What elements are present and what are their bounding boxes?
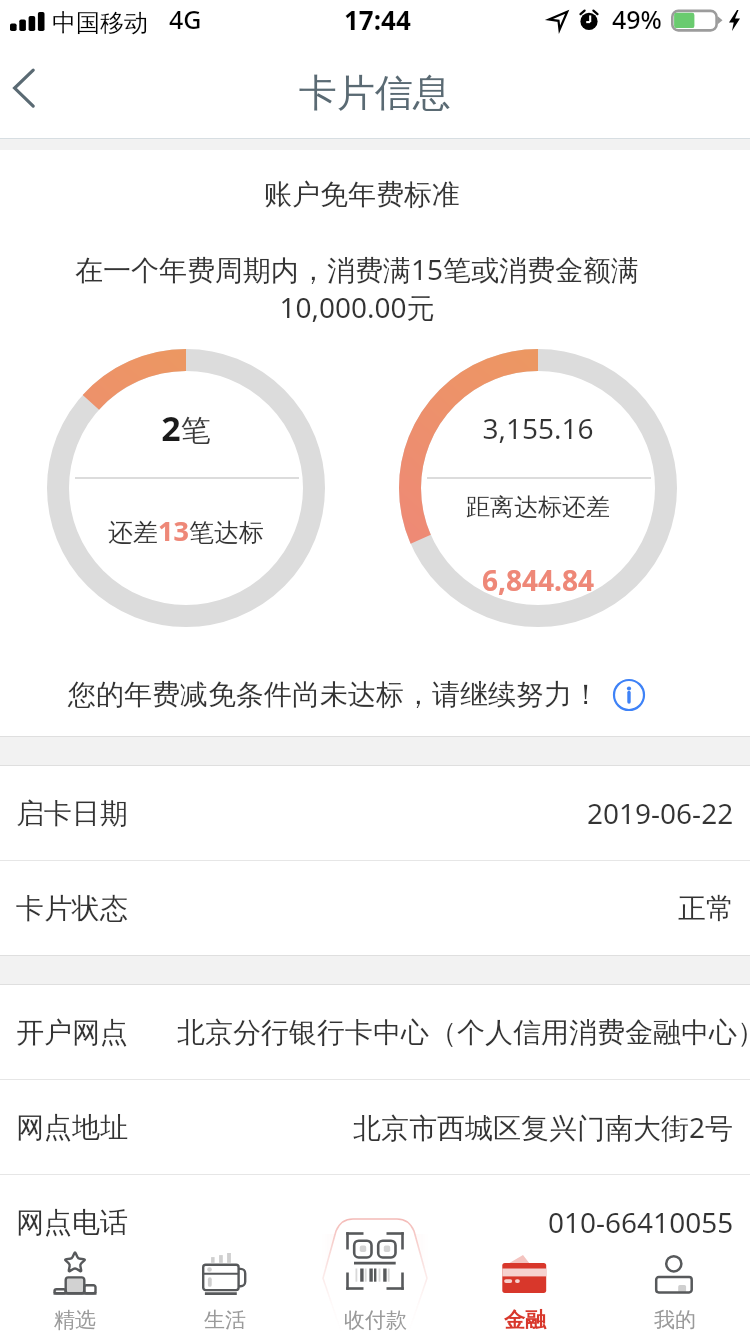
button[interactable]: 金融 — [450, 1238, 600, 1334]
staticText: 卡片信息 — [299, 69, 451, 117]
button[interactable]: Back — [0, 58, 74, 138]
button[interactable]: 网点地址 — [0, 1080, 750, 1174]
staticText: 卡片状态 — [16, 891, 128, 926]
staticText: 2019-06-22 — [587, 794, 734, 832]
staticText: 网点电话 — [16, 1205, 128, 1240]
button[interactable]: 精选 — [0, 1238, 150, 1334]
staticText: 2笔 — [47, 405, 325, 451]
staticText: 中国移动 — [52, 8, 148, 38]
staticText: 收付款 — [344, 1307, 407, 1333]
staticText: 金融 — [504, 1307, 546, 1333]
staticText: 网点地址 — [16, 1110, 128, 1145]
staticText: 还差13笔达标 — [47, 512, 325, 549]
button[interactable]: 卡片状态 — [0, 861, 750, 955]
staticText: 生活 — [204, 1307, 246, 1333]
staticText: 4G — [169, 2, 202, 36]
button[interactable]: 开户网点 — [0, 985, 750, 1079]
staticText: 3,155.16 — [399, 409, 677, 447]
button[interactable]: 网点电话 — [0, 1175, 750, 1269]
staticText: 49% — [612, 2, 662, 36]
staticText: 开户网点 — [16, 1015, 128, 1050]
staticText: 正常 — [678, 891, 734, 926]
staticText: 北京市西城区复兴门南大街2号 — [353, 1108, 734, 1146]
staticText: 010-66410055 — [548, 1203, 734, 1241]
staticText: 我的 — [654, 1307, 696, 1333]
button[interactable]: 我的 — [600, 1238, 750, 1334]
staticText: 17:44 — [344, 2, 411, 37]
staticText: 北京分行银行卡中心（个人信用消费金融中心） — [177, 1015, 750, 1050]
button[interactable]: 生活 — [150, 1238, 300, 1334]
button[interactable]: 收付款 — [300, 1238, 450, 1334]
button[interactable]: Info — [612, 678, 646, 712]
button[interactable]: 启卡日期 — [0, 766, 750, 860]
staticText: 精选 — [54, 1307, 96, 1333]
staticText: 6,844.84 — [399, 561, 677, 599]
staticText: 账户免年费标准 — [0, 177, 724, 212]
staticText: 您的年费减免条件尚未达标，请继续努力！ — [68, 677, 600, 712]
staticText: 启卡日期 — [16, 796, 128, 831]
staticText: 在一个年费周期内，消费满15笔或消费金额满10,000.00元 — [65, 250, 649, 326]
staticText: 距离达标还差 — [399, 492, 677, 522]
